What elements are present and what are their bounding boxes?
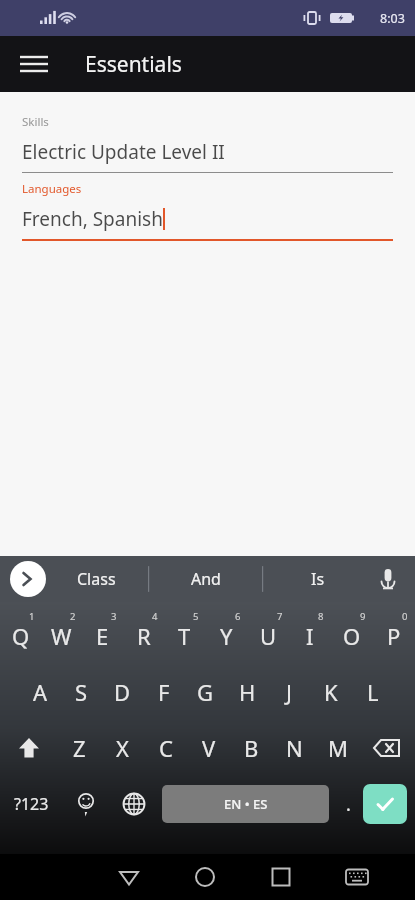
staticText: P <box>387 621 401 651</box>
staticText: U <box>260 621 277 651</box>
staticText: M <box>328 733 348 763</box>
staticText: 2 <box>70 610 76 623</box>
staticText: Z <box>73 733 86 763</box>
staticText: W <box>51 621 72 651</box>
staticText: 3 <box>111 610 117 623</box>
staticText: 6 <box>235 610 241 623</box>
button[interactable]: C <box>144 720 187 776</box>
button[interactable]: Recent apps <box>243 854 319 900</box>
button[interactable]: Expand suggestions <box>10 561 46 597</box>
staticText: N <box>286 733 303 763</box>
button[interactable]: EN • ES <box>162 785 329 823</box>
button[interactable]: Emoji <box>62 776 110 832</box>
staticText: H <box>239 677 256 707</box>
button[interactable]: U <box>247 608 289 664</box>
staticText: French, Spanish <box>22 206 163 232</box>
button[interactable]: Hide keyboard <box>90 854 167 900</box>
staticText: R <box>137 621 151 651</box>
button[interactable]: Q <box>0 608 41 664</box>
staticText: X <box>116 733 129 763</box>
button[interactable]: Y <box>205 608 247 664</box>
button[interactable]: Backspace <box>359 720 415 776</box>
staticText: ?123 <box>14 793 49 815</box>
button[interactable]: L <box>352 664 394 720</box>
staticText: EN • ES <box>224 795 268 813</box>
button[interactable]: Is <box>281 556 355 602</box>
button[interactable]: M <box>316 720 359 776</box>
staticText: C <box>159 733 173 763</box>
staticText: O <box>343 621 361 651</box>
button[interactable]: R <box>123 608 164 664</box>
button[interactable]: Home <box>167 854 243 900</box>
button[interactable]: V <box>187 720 230 776</box>
staticText: E <box>96 621 109 651</box>
staticText: 4 <box>152 610 158 623</box>
button[interactable]: T <box>164 608 205 664</box>
button[interactable]: Open navigation menu <box>14 44 54 84</box>
button[interactable]: S <box>61 664 102 720</box>
button[interactable]: X <box>101 720 144 776</box>
staticText: And <box>191 568 221 590</box>
button[interactable]: A <box>20 664 61 720</box>
staticText: 8 <box>318 610 324 623</box>
staticText: 5 <box>193 610 199 623</box>
staticText: 9 <box>360 610 366 623</box>
button[interactable]: Languages <box>22 181 393 241</box>
button[interactable]: Z <box>57 720 101 776</box>
staticText: Electric Update Level II <box>22 139 225 165</box>
staticText: T <box>178 621 191 651</box>
staticText: Skills <box>22 114 49 130</box>
staticText: Q <box>12 621 30 651</box>
button[interactable]: J <box>268 664 310 720</box>
button[interactable]: P <box>373 608 415 664</box>
staticText: L <box>367 677 379 707</box>
staticText: . <box>346 792 351 817</box>
button[interactable]: D <box>102 664 143 720</box>
staticText: Is <box>311 568 325 590</box>
staticText: K <box>324 677 338 707</box>
button[interactable]: W <box>41 608 82 664</box>
staticText: 1 <box>29 610 35 623</box>
staticText: 7 <box>277 610 283 623</box>
button[interactable]: E <box>82 608 123 664</box>
staticText: F <box>158 677 170 707</box>
button[interactable]: Done <box>363 784 407 824</box>
staticText: D <box>114 677 131 707</box>
staticText: S <box>75 677 88 707</box>
staticText: A <box>33 677 48 707</box>
button[interactable]: And <box>169 556 243 602</box>
button[interactable]: Shift <box>0 720 57 776</box>
button[interactable]: F <box>143 664 184 720</box>
staticText: Y <box>220 621 233 651</box>
staticText: J <box>286 677 293 707</box>
button[interactable]: Class <box>59 556 133 602</box>
button[interactable]: . <box>333 776 363 832</box>
button[interactable]: B <box>230 720 273 776</box>
staticText: B <box>244 733 259 763</box>
staticText: 0 <box>402 610 408 623</box>
button[interactable]: Switch keyboard <box>319 854 395 900</box>
button[interactable]: ?123 <box>0 776 62 832</box>
button[interactable]: G <box>184 664 226 720</box>
button[interactable]: Voice input <box>369 560 407 598</box>
staticText: Languages <box>22 181 82 197</box>
button[interactable]: K <box>310 664 352 720</box>
button[interactable]: H <box>226 664 268 720</box>
staticText: V <box>202 733 216 763</box>
staticText: Class <box>77 568 116 590</box>
button[interactable]: O <box>331 608 373 664</box>
button[interactable]: N <box>273 720 316 776</box>
button[interactable]: Skills <box>22 114 393 173</box>
staticText: 8:03 <box>380 10 405 27</box>
staticText: I <box>306 621 314 651</box>
button[interactable]: I <box>289 608 331 664</box>
staticText: Essentials <box>85 50 182 79</box>
staticText: G <box>197 677 214 707</box>
button[interactable]: Change keyboard language <box>110 776 158 832</box>
